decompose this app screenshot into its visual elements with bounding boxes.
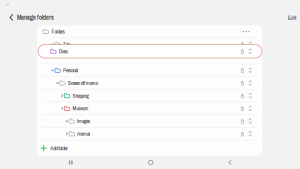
button[interactable]: Personal [37,64,262,76]
staticText: Museum [72,105,88,112]
staticText: Add folder [50,144,67,152]
staticText: Images [77,117,90,125]
button[interactable]: Museum [37,102,262,114]
staticText: Animal [77,130,90,137]
staticText: Trip [63,40,70,48]
staticText: Screen off memo [68,79,98,87]
button[interactable]: Trip [37,38,262,50]
staticText: Shopping [72,92,88,99]
staticText: Diary [59,48,68,55]
staticText: Folders [51,28,64,35]
button[interactable]: More options [239,27,253,36]
button[interactable]: Images [37,115,262,127]
staticText: Manage folders [17,13,54,22]
button[interactable]: Shopping [37,90,262,102]
button[interactable]: Edit [284,8,300,27]
button[interactable]: Home [141,153,160,169]
button[interactable]: Animal [37,128,262,140]
staticText: Edit [288,13,296,22]
button[interactable]: Back [6,9,17,26]
button[interactable]: Screen off memo [37,77,262,89]
button[interactable]: Recent apps [62,153,80,169]
button[interactable]: Back [222,153,238,169]
staticText: Personal [63,67,78,74]
button[interactable]: Add folder [37,140,262,156]
